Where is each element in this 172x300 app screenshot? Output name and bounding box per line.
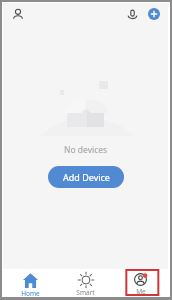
staticText: Add Device bbox=[63, 171, 110, 183]
staticText: Smart bbox=[76, 288, 95, 296]
button[interactable]: Voice command bbox=[127, 9, 138, 20]
staticText: Me bbox=[136, 287, 146, 296]
staticText: No devices bbox=[64, 144, 108, 156]
button[interactable]: Profile bbox=[12, 8, 24, 20]
button[interactable]: Smart bbox=[58, 269, 113, 296]
button[interactable]: Home bbox=[3, 269, 58, 296]
button[interactable]: Me bbox=[113, 269, 168, 296]
button[interactable]: Add Device bbox=[48, 166, 124, 188]
staticText: Home bbox=[21, 289, 40, 296]
button[interactable]: Add device bbox=[148, 8, 160, 20]
